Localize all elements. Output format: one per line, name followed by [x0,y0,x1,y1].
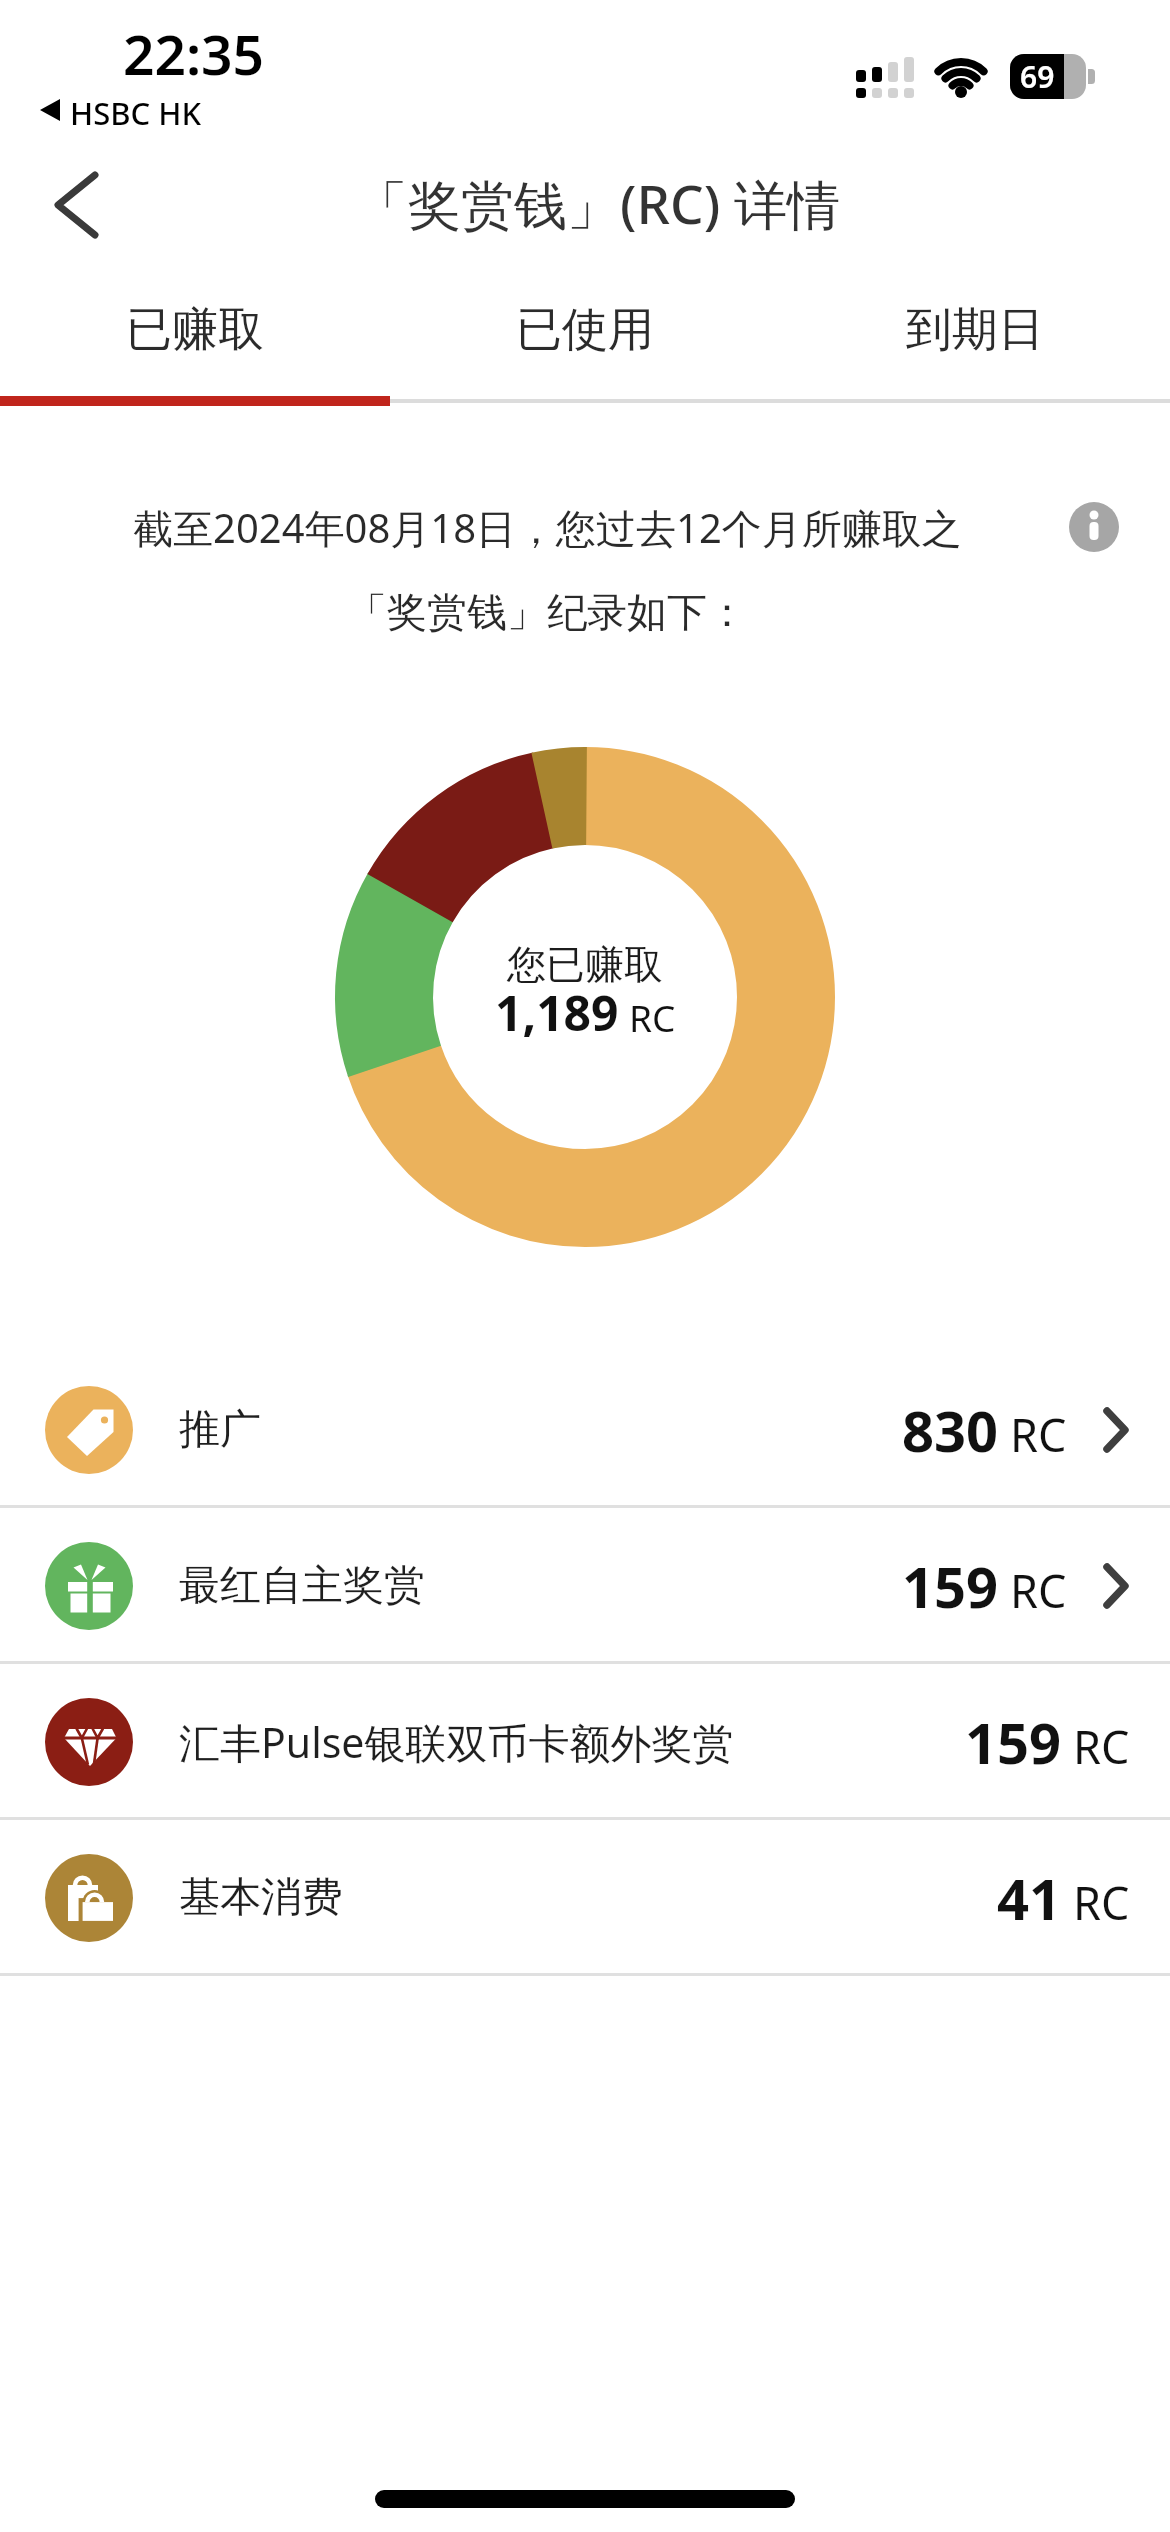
staticText: 69 [1020,56,1055,97]
staticText: 基本消费 [179,1872,343,1924]
staticText: 推广 [179,1404,261,1456]
staticText: 159 [965,1704,1062,1780]
staticText: 汇丰Pulse银联双币卡额外奖赏 [179,1714,734,1770]
staticText: 已赚取 [126,301,264,359]
staticText: 「奖赏钱」纪录如下： [347,587,747,637]
staticText: 159 [902,1548,999,1624]
button[interactable]: 已赚取 [0,288,390,372]
staticText: RC [1073,1716,1130,1777]
staticText: 已使用 [516,301,654,359]
button[interactable]: 基本消费 [0,1820,1170,1976]
staticText: 最红自主奖赏 [179,1560,425,1612]
staticText: 「奖赏钱」(RC) 详情 [355,167,841,239]
staticText: 830 [902,1392,999,1468]
staticText: 截至2024年08月18日，您过去12个月所赚取之 [133,500,962,555]
button[interactable]: 到期日 [780,288,1170,372]
button[interactable] [1069,502,1119,552]
button[interactable]: 汇丰Pulse银联双币卡额外奖赏 [0,1664,1170,1820]
staticText: 您已赚取 [507,940,663,989]
staticText: RC [1073,1872,1130,1933]
button[interactable]: 推广 [0,1352,1170,1508]
staticText: RC [1010,1560,1067,1621]
staticText: 1,189 [495,980,619,1045]
staticText: HSBC HK [70,92,202,128]
staticText: RC [629,992,676,1042]
staticText: 22:35 [123,16,265,78]
staticText: 到期日 [906,301,1044,359]
button[interactable] [40,160,110,250]
staticText: RC [1010,1404,1067,1465]
button[interactable]: 已使用 [390,288,780,372]
staticText: 41 [997,1860,1062,1936]
button[interactable]: 最红自主奖赏 [0,1508,1170,1664]
